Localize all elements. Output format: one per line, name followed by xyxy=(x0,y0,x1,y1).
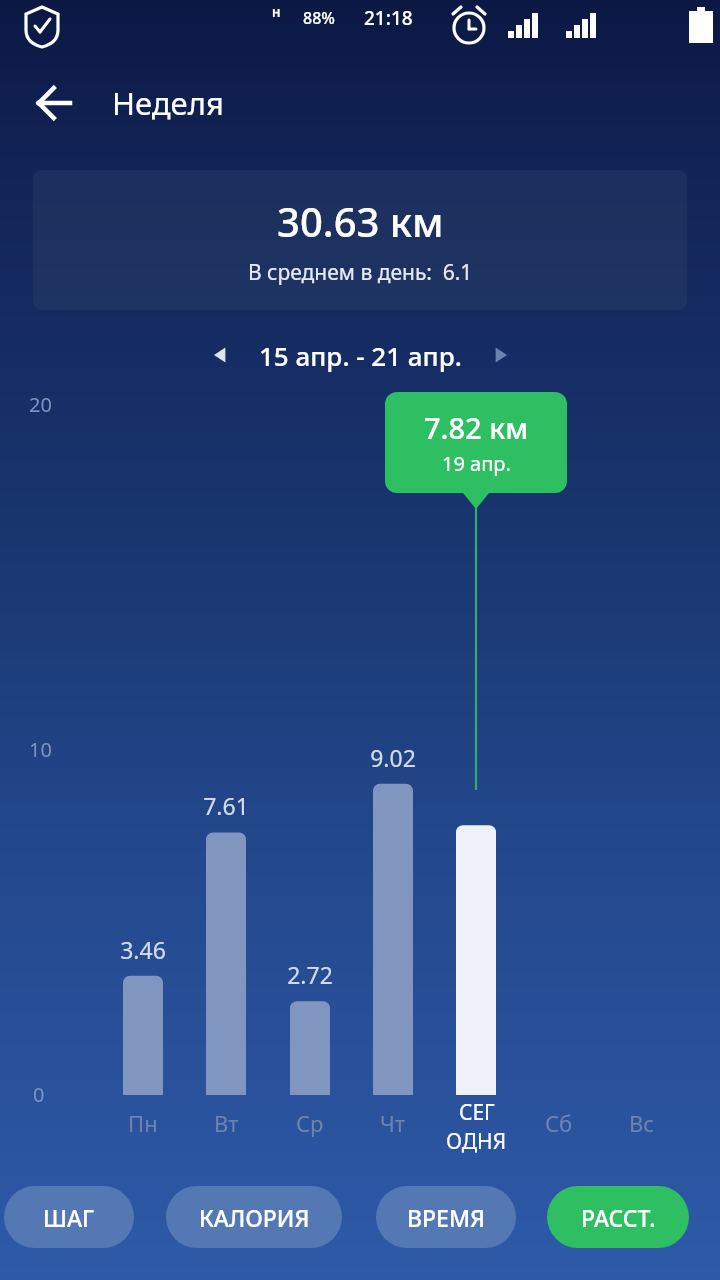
staticText: Неделя xyxy=(112,82,224,124)
staticText: H xyxy=(272,5,281,20)
button[interactable]: РАССТ. xyxy=(547,1186,689,1248)
staticText: КАЛОРИЯ xyxy=(199,1202,310,1233)
staticText: 10 xyxy=(29,736,52,763)
staticText: СЕГ xyxy=(459,1098,495,1127)
button[interactable]: Next week xyxy=(476,331,524,379)
staticText: ШАГ xyxy=(43,1202,95,1233)
staticText: Сб xyxy=(545,1108,573,1138)
button[interactable]: Previous week xyxy=(197,331,245,379)
staticText: В среднем в день: 6.1 xyxy=(248,258,473,287)
button[interactable]: 30.63 км xyxy=(33,170,687,310)
staticText: 19 апр. xyxy=(442,450,511,477)
staticText: 20 xyxy=(29,391,52,418)
staticText: РАССТ. xyxy=(581,1202,656,1233)
button[interactable]: 7.82 км xyxy=(385,392,567,493)
staticText: 7.82 км xyxy=(424,408,529,447)
staticText: Пн xyxy=(128,1108,158,1138)
button[interactable]: КАЛОРИЯ xyxy=(166,1186,342,1248)
staticText: Чт xyxy=(380,1108,406,1138)
staticText: Ср xyxy=(296,1108,324,1138)
button[interactable]: ВРЕМЯ xyxy=(376,1186,516,1248)
staticText: ВРЕМЯ xyxy=(407,1202,485,1233)
staticText: 21:18 xyxy=(364,5,413,31)
staticText: 88% xyxy=(303,7,335,29)
staticText: Вс xyxy=(629,1108,655,1138)
staticText: 30.63 км xyxy=(277,194,444,248)
staticText: 2.72 xyxy=(287,959,333,990)
button[interactable]: ШАГ xyxy=(4,1186,134,1248)
button[interactable]: Back xyxy=(22,71,86,135)
staticText: 9.02 xyxy=(370,742,416,773)
staticText: 0 xyxy=(33,1081,45,1108)
staticText: 7.61 xyxy=(203,790,249,821)
staticText: Вт xyxy=(214,1108,239,1138)
staticText: 3.46 xyxy=(120,934,166,965)
staticText: ОДНЯ xyxy=(446,1127,507,1156)
staticText: 15 апр. - 21 апр. xyxy=(259,338,462,373)
